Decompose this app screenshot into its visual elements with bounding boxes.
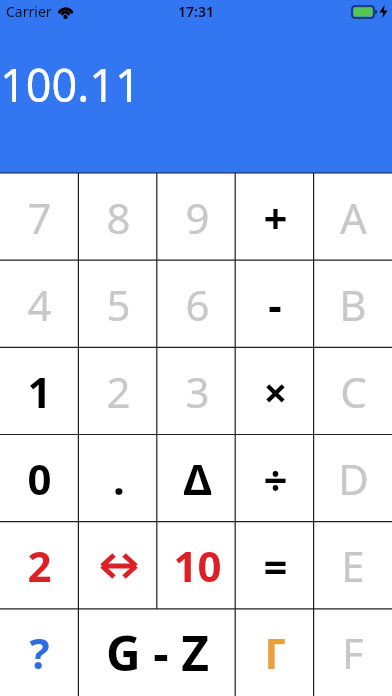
- button[interactable]: 8: [79, 173, 158, 261]
- button[interactable]: A: [314, 173, 392, 261]
- staticText: E: [341, 537, 365, 594]
- button[interactable]: 10: [158, 522, 236, 609]
- staticText: B: [339, 276, 367, 333]
- button[interactable]: D: [314, 435, 392, 522]
- button[interactable]: B: [314, 261, 392, 348]
- staticText: Γ: [264, 624, 287, 681]
- button[interactable]: 5: [79, 261, 158, 348]
- staticText: ÷: [263, 450, 288, 507]
- button[interactable]: 2: [79, 348, 158, 435]
- staticText: 2: [106, 363, 131, 420]
- staticText: 4: [27, 276, 52, 333]
- staticText: F: [342, 624, 364, 681]
- button[interactable]: ?: [0, 609, 79, 696]
- staticText: G - Z: [106, 620, 209, 685]
- button[interactable]: [79, 522, 158, 609]
- staticText: Δ: [183, 450, 212, 507]
- staticText: .: [113, 450, 125, 507]
- staticText: 100.11: [0, 54, 141, 115]
- staticText: 7: [27, 189, 52, 246]
- button[interactable]: 9: [158, 173, 236, 261]
- button[interactable]: 2: [0, 522, 79, 609]
- button[interactable]: ×: [236, 348, 314, 435]
- button[interactable]: 4: [0, 261, 79, 348]
- staticText: A: [340, 189, 367, 246]
- staticText: 5: [106, 276, 131, 333]
- button[interactable]: Γ: [236, 609, 314, 696]
- button[interactable]: 6: [158, 261, 236, 348]
- button[interactable]: 3: [158, 348, 236, 435]
- button[interactable]: =: [236, 522, 314, 609]
- button[interactable]: -: [236, 261, 314, 348]
- staticText: 2: [27, 537, 52, 594]
- button[interactable]: G - Z: [79, 609, 236, 696]
- button[interactable]: E: [314, 522, 392, 609]
- staticText: ×: [263, 363, 288, 420]
- staticText: C: [340, 363, 367, 420]
- button[interactable]: 7: [0, 173, 79, 261]
- staticText: Carrier: [6, 2, 52, 21]
- staticText: =: [263, 537, 288, 594]
- staticText: D: [338, 450, 369, 507]
- staticText: ?: [29, 624, 50, 681]
- button[interactable]: .: [79, 435, 158, 522]
- staticText: 6: [185, 276, 210, 333]
- button[interactable]: ÷: [236, 435, 314, 522]
- button[interactable]: 0: [0, 435, 79, 522]
- staticText: 0: [27, 450, 52, 507]
- staticText: 9: [185, 189, 210, 246]
- staticText: 17:31: [178, 2, 214, 21]
- staticText: -: [268, 276, 282, 333]
- staticText: 3: [185, 363, 210, 420]
- staticText: +: [263, 189, 288, 246]
- button[interactable]: Δ: [158, 435, 236, 522]
- staticText: 8: [106, 189, 131, 246]
- button[interactable]: +: [236, 173, 314, 261]
- button[interactable]: 1: [0, 348, 79, 435]
- button[interactable]: C: [314, 348, 392, 435]
- staticText: 10: [173, 537, 222, 594]
- staticText: 1: [27, 363, 52, 420]
- button[interactable]: F: [314, 609, 392, 696]
